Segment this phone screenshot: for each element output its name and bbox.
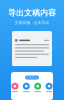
staticText: 立即导出 — [26, 76, 38, 79]
staticText: 文稿排版 · 全本导出 — [14, 20, 49, 25]
button[interactable]: 更多 — [45, 83, 54, 92]
button[interactable]: 收藏 — [10, 83, 19, 92]
button[interactable]: 分享 — [22, 83, 31, 92]
staticText: 导出文稿内容 — [8, 8, 56, 18]
button[interactable]: 微信 — [33, 83, 42, 92]
button[interactable]: 立即导出 — [25, 75, 39, 79]
